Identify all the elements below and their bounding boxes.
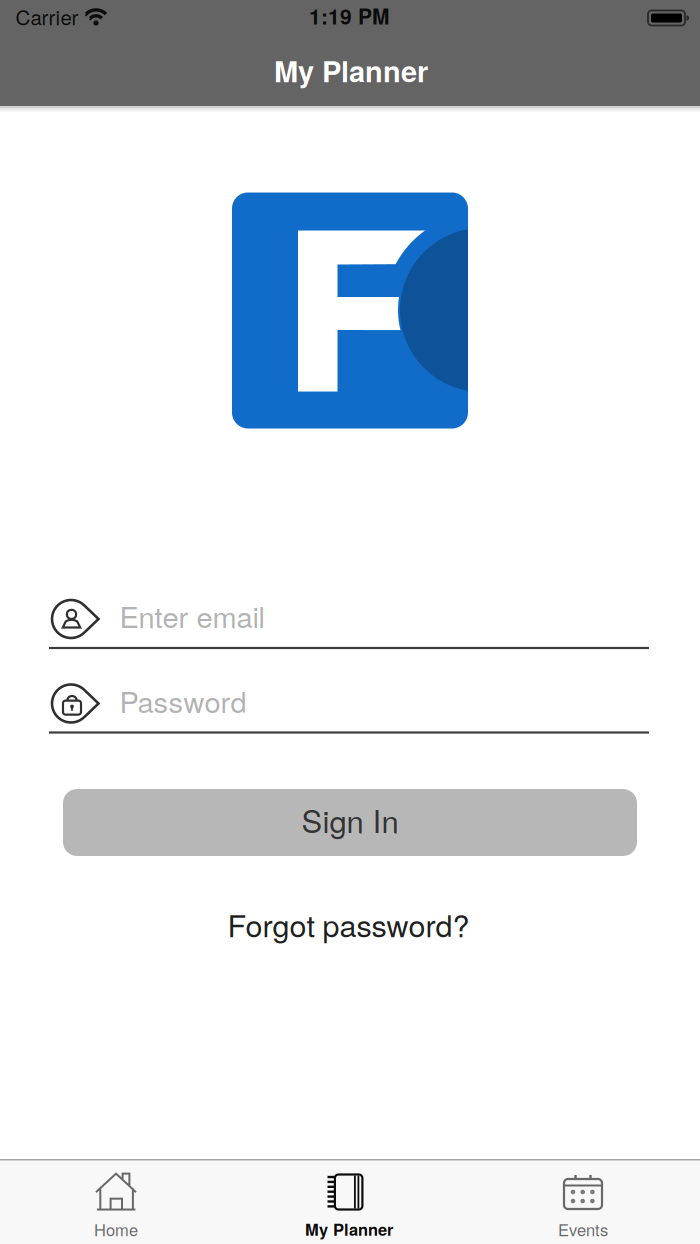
staticText: Carrier [15, 2, 78, 31]
staticText: Home [94, 1217, 138, 1241]
staticText: Forgot password? [227, 902, 469, 946]
staticText: My Planner [274, 50, 428, 91]
button[interactable]: Forgot password? [227, 902, 469, 946]
staticText: Password [119, 680, 246, 721]
button[interactable]: Events [483, 1159, 683, 1243]
staticText: Events [558, 1217, 608, 1241]
staticText: Enter email [119, 595, 264, 636]
button[interactable]: Home [16, 1159, 216, 1243]
button[interactable]: My Planner [249, 1159, 449, 1243]
staticText: 1:19 PM [309, 1, 389, 31]
staticText: Sign In [301, 797, 398, 842]
button[interactable]: Password [49, 682, 649, 734]
staticText: My Planner [305, 1217, 393, 1241]
button[interactable]: Sign In [63, 789, 637, 856]
button[interactable]: Enter email [49, 598, 649, 650]
